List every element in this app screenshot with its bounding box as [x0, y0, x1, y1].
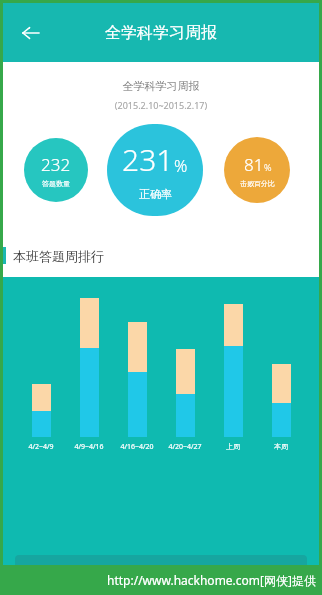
staticText: 正确率	[139, 187, 172, 201]
staticText: http://www.hackhome.com[网侠]提供	[107, 572, 316, 588]
button[interactable]: 231	[107, 124, 203, 216]
staticText: (2015.2.10~2015.2.17)	[3, 99, 319, 111]
staticText: 全学科学习周报	[3, 79, 319, 93]
staticText: 击败百分比	[240, 179, 275, 188]
staticText: %	[174, 154, 188, 176]
button[interactable]: 232	[24, 138, 88, 202]
staticText: 4/20~4/27	[161, 442, 209, 452]
staticText: 232	[41, 153, 71, 176]
staticText: 4/9~4/16	[65, 442, 113, 452]
button[interactable]: 一周共作答55题，正确率33%	[15, 555, 307, 585]
staticText: 全学科学习周报	[105, 23, 217, 43]
staticText: 上周	[209, 442, 257, 451]
staticText: 81	[244, 153, 264, 176]
staticText: 231	[122, 139, 174, 180]
button[interactable]: 81	[224, 137, 290, 203]
button[interactable]: Back	[11, 13, 51, 53]
staticText: 4/16~4/20	[113, 442, 161, 452]
staticText: 本周	[257, 442, 305, 451]
staticText: %	[264, 161, 272, 174]
staticText: 本班答题周排行	[13, 248, 104, 264]
staticText: 4/2~4/9	[17, 442, 65, 452]
staticText: 一周共作答55题，正确率33%	[44, 563, 176, 577]
staticText: 答题数量	[42, 179, 70, 188]
